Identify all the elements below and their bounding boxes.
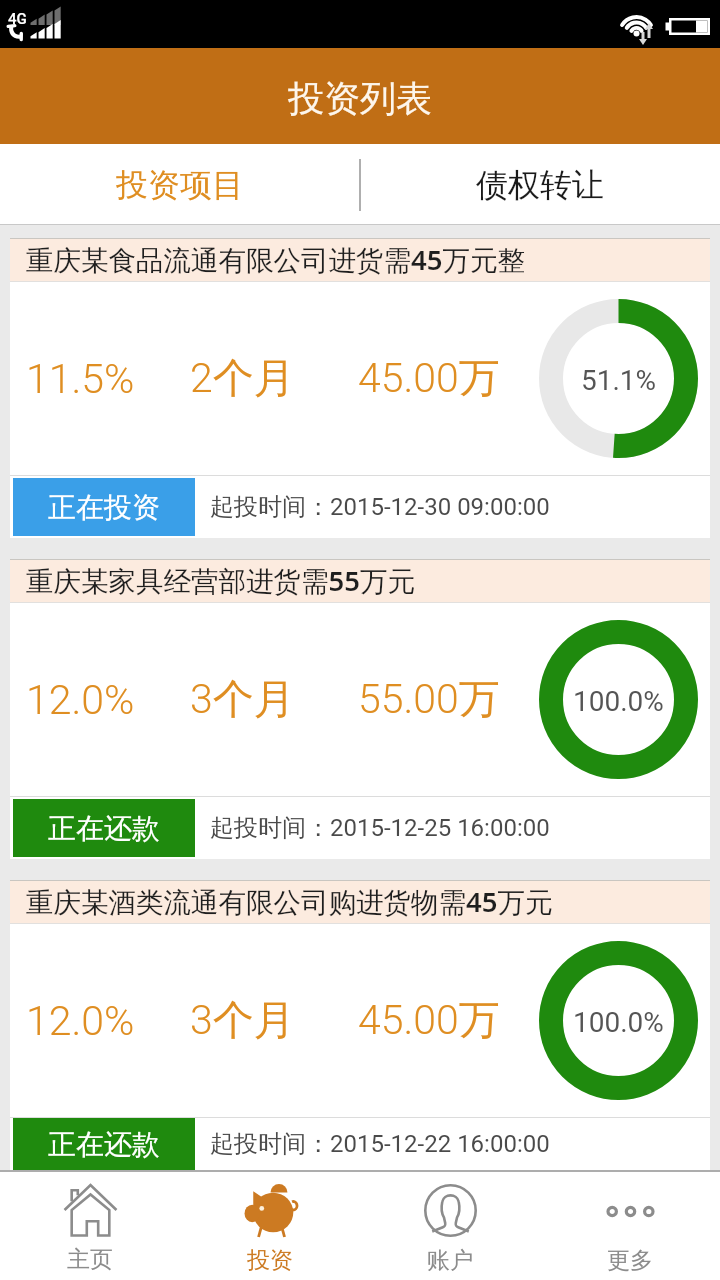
staticText: 重庆某酒类流通有限公司购进货物需45万元 — [26, 883, 553, 921]
staticText: 2个月 — [190, 353, 295, 405]
staticText: 正在还款 — [48, 811, 160, 846]
staticText: 起投时间：2015-12-30 09:00:00 — [210, 492, 550, 522]
staticText: 账户 — [427, 1246, 473, 1275]
staticText: 55.00万 — [358, 674, 500, 726]
staticText: 100.0% — [573, 685, 664, 718]
button[interactable]: More — [540, 1172, 720, 1280]
button[interactable]: 债权转让 — [360, 144, 720, 225]
staticText: 债权转让 — [476, 165, 604, 205]
staticText: 主页 — [67, 1245, 113, 1274]
staticText: 投资列表 — [288, 76, 432, 121]
staticText: 重庆某家具经营部进货需55万元 — [26, 562, 415, 600]
button[interactable]: 重庆某酒类流通有限公司购进货物需45万元 — [10, 880, 710, 1170]
staticText: 起投时间：2015-12-25 16:00:00 — [210, 813, 550, 843]
staticText: 100.0% — [573, 1006, 664, 1039]
staticText: 3个月 — [190, 674, 295, 726]
button[interactable]: 投资项目 — [0, 144, 360, 225]
staticText: 51.1% — [581, 364, 657, 397]
staticText: 12.0% — [26, 997, 135, 1045]
staticText: 投资项目 — [116, 165, 244, 205]
staticText: 4G — [8, 10, 27, 28]
staticText: 重庆某食品流通有限公司进货需45万元整 — [26, 241, 525, 279]
staticText: 更多 — [607, 1246, 653, 1275]
button[interactable]: Investments — [180, 1172, 360, 1280]
staticText: 起投时间：2015-12-22 16:00:00 — [210, 1129, 550, 1159]
button[interactable]: 正在投资 — [13, 478, 195, 536]
staticText: 投资 — [247, 1246, 293, 1275]
staticText: 正在还款 — [48, 1127, 160, 1162]
staticText: 3个月 — [190, 995, 295, 1047]
staticText: 11.5% — [26, 355, 135, 403]
button[interactable]: 重庆某食品流通有限公司进货需45万元整 — [10, 238, 710, 538]
button[interactable]: 正在还款 — [13, 799, 195, 857]
button[interactable]: Home — [0, 1172, 180, 1280]
staticText: 12.0% — [26, 676, 135, 724]
button[interactable]: 重庆某家具经营部进货需55万元 — [10, 559, 710, 859]
button[interactable]: 正在还款 — [13, 1118, 195, 1170]
staticText: 45.00万 — [358, 353, 500, 405]
staticText: 45.00万 — [358, 995, 500, 1047]
staticText: 正在投资 — [48, 490, 160, 525]
button[interactable]: Account — [360, 1172, 540, 1280]
